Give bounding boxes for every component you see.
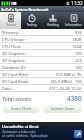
staticText: 222 [75, 58, 82, 63]
staticText: Memory: [2, 30, 19, 35]
staticText: SD Card Write: [2, 72, 30, 77]
staticText: SD Card Read: [2, 79, 29, 84]
button[interactable]: Memory: [2, 29, 82, 35]
staticText: Vystavujte a fakturujte [2, 130, 36, 134]
button[interactable]: Scores [0, 12, 21, 29]
staticText: (9.5 MB/s) [56, 72, 75, 77]
button[interactable]: Ranking [42, 12, 63, 29]
staticText: Score Chart [11, 106, 32, 111]
staticText: 926 [75, 30, 82, 35]
button[interactable]: SD Card Read: [2, 78, 82, 84]
staticText: ze svého telefonu. Vyzkoušejte [2, 134, 48, 138]
button[interactable]: Testing [21, 12, 42, 29]
staticText: 2011-05-28 11:32 [49, 86, 82, 91]
staticText: Date: [2, 86, 12, 91]
staticText: 140 [75, 65, 82, 70]
staticText: Ranking [47, 23, 59, 27]
staticText: Database IO: [2, 65, 27, 70]
staticText: 1244 [72, 44, 82, 49]
other: Open advertisement [74, 130, 82, 138]
staticText: Total scores: [2, 95, 33, 102]
staticText: CPU Float: [2, 44, 22, 49]
staticText: 196 [75, 79, 82, 84]
button[interactable]: 2D Graphics: [2, 50, 82, 56]
staticText: AnTuTu System Benchmark [1, 7, 49, 12]
button[interactable]: Database IO: [2, 64, 82, 70]
staticText: 1408 [72, 37, 82, 42]
staticText: 2D Graphics: [2, 51, 26, 56]
button[interactable]: Date: [2, 85, 82, 91]
staticText: 95 [77, 72, 82, 77]
button[interactable]: CPU Integer: [2, 36, 82, 42]
button[interactable]: Information [63, 12, 84, 29]
staticText: 149 [75, 51, 82, 56]
staticText: Testing [26, 23, 37, 27]
staticText: 4380 [67, 94, 82, 103]
staticText: Submit Score [51, 106, 75, 111]
staticText: CPU Integer: [2, 37, 26, 42]
staticText: Scores [6, 23, 16, 27]
button[interactable]: 3D Graphics: [2, 57, 82, 63]
staticText: (45.5 MB/s) [51, 79, 73, 84]
staticText: Usnadněte si život [2, 124, 39, 129]
button[interactable]: Score Chart [2, 104, 40, 113]
staticText: Information [65, 23, 82, 27]
staticText: 11:32 [71, 0, 83, 6]
button[interactable]: CPU Float: [2, 43, 82, 49]
button[interactable]: Usnadněte si život [0, 122, 84, 140]
button[interactable]: Submit Score [43, 104, 82, 113]
button[interactable]: SD Card Write: [2, 71, 82, 77]
staticText: 3D Graphics: [2, 58, 26, 63]
